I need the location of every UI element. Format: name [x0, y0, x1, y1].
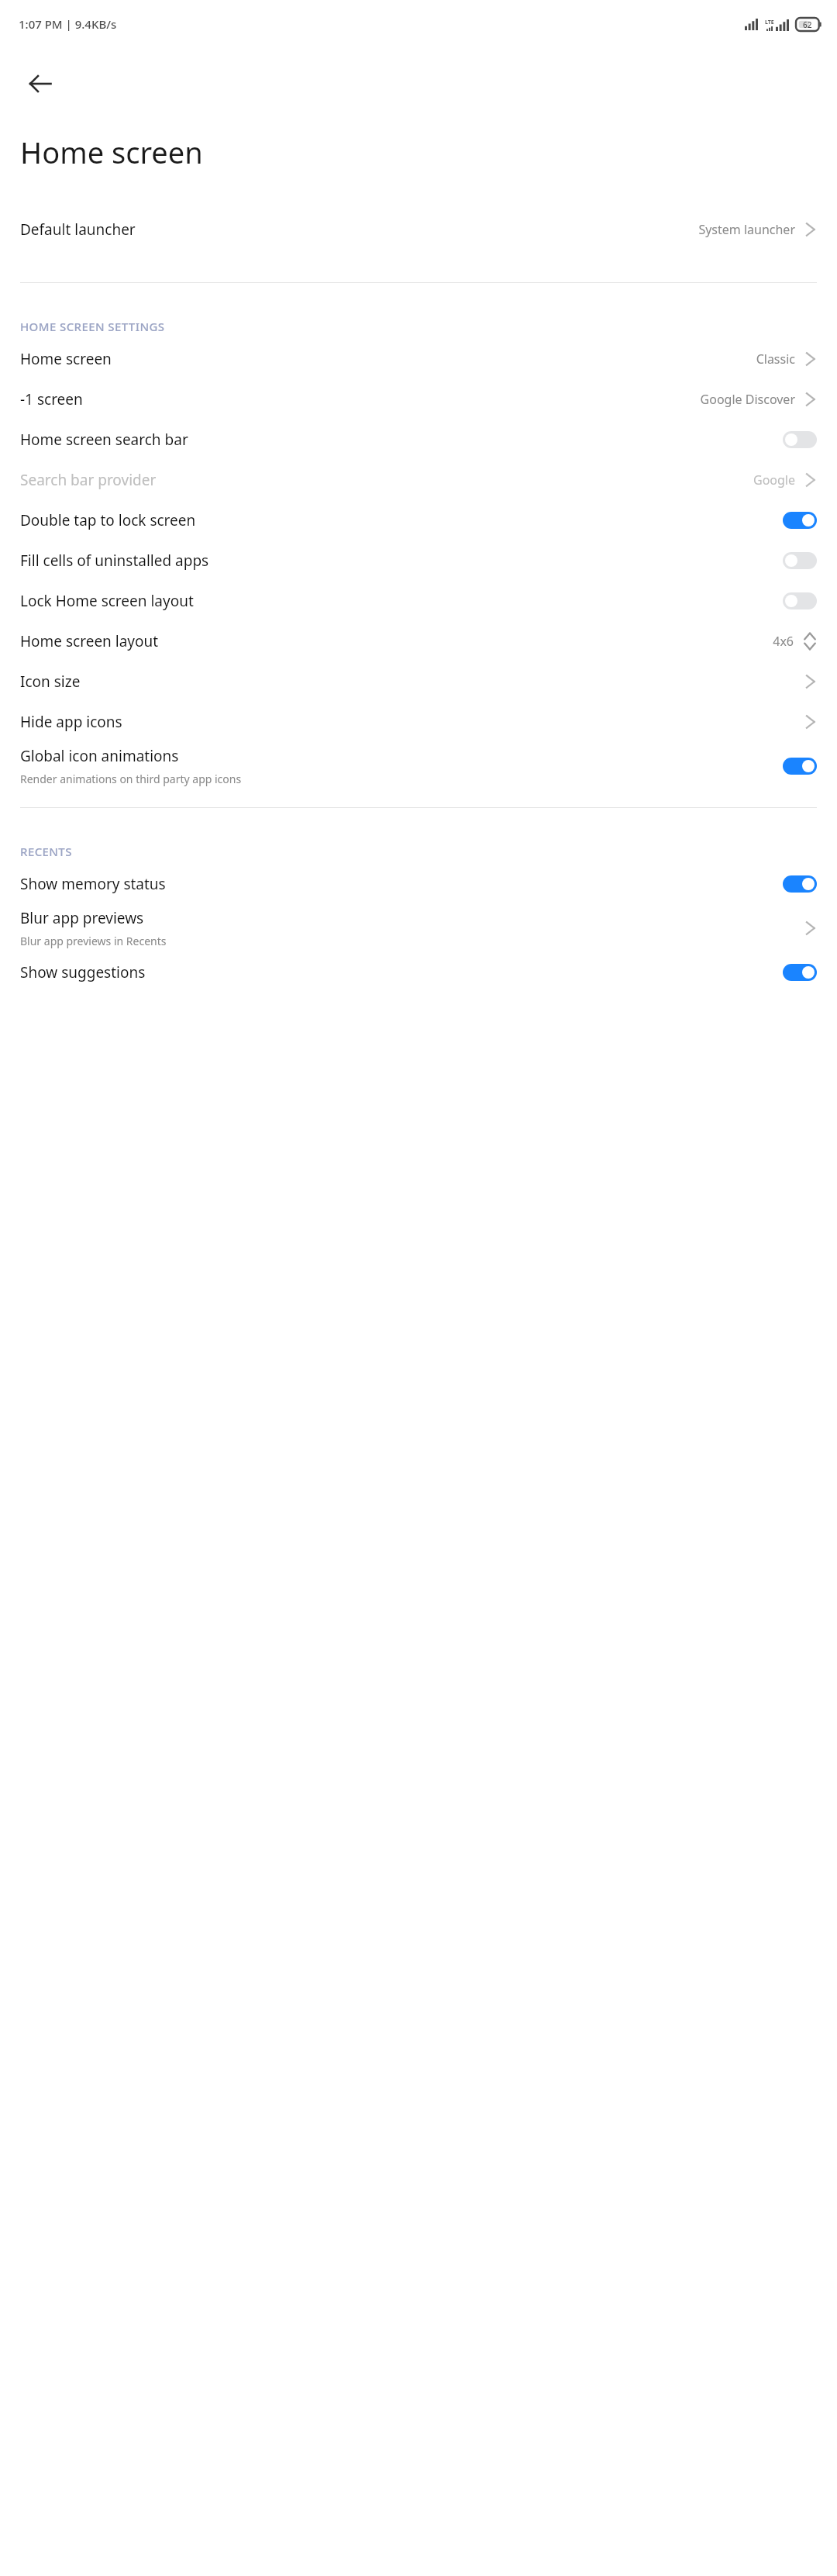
button[interactable]: Lock Home screen layout — [0, 581, 837, 621]
staticText: LTE — [765, 19, 774, 26]
button[interactable]: On — [783, 512, 817, 529]
button[interactable]: On — [783, 964, 817, 981]
staticText: Home screen — [20, 349, 112, 369]
staticText: Hide app icons — [20, 712, 122, 732]
staticText: Home screen layout — [20, 631, 159, 651]
button[interactable]: Home screen search bar — [0, 420, 837, 460]
staticText: Fill cells of uninstalled apps — [20, 551, 209, 571]
staticText: Double tap to lock screen — [20, 510, 196, 530]
button[interactable]: Search bar provider — [0, 460, 837, 500]
staticText: Home screen search bar — [20, 430, 188, 450]
button[interactable]: Show suggestions — [0, 952, 837, 993]
staticText: Render animations on third party app ico… — [20, 772, 242, 786]
staticText: 62 — [803, 19, 812, 30]
button[interactable]: Off — [783, 592, 817, 609]
button[interactable]: Off — [783, 552, 817, 569]
button[interactable]: Home screen layout — [0, 621, 837, 661]
button[interactable]: Double tap to lock screen — [0, 500, 837, 540]
button[interactable]: Blur app previews — [0, 904, 837, 952]
button[interactable]: -1 screen — [0, 379, 837, 420]
staticText: -1 screen — [20, 389, 83, 409]
staticText: Home screen — [20, 132, 203, 172]
staticText: Classic — [756, 350, 795, 368]
staticText: Blur app previews — [20, 908, 144, 928]
button[interactable]: On — [783, 758, 817, 775]
staticText: Google — [753, 471, 795, 489]
staticText: System launcher — [698, 221, 795, 238]
staticText: Blur app previews in Recents — [20, 934, 167, 948]
staticText: Show suggestions — [20, 962, 146, 982]
staticText: 1:07 PM | 9.4KB/s — [19, 16, 117, 32]
staticText: Google Discover — [700, 391, 795, 408]
staticText: 4x6 — [773, 633, 794, 650]
staticText: Global icon animations — [20, 746, 179, 766]
button[interactable]: Default launcher — [0, 192, 837, 267]
button[interactable]: Home screen — [0, 339, 837, 379]
button[interactable]: Icon size — [0, 661, 837, 702]
staticText: Search bar provider — [20, 470, 157, 490]
staticText: HOME SCREEN SETTINGS — [20, 319, 165, 334]
staticText: RECENTS — [20, 844, 72, 859]
button[interactable]: Fill cells of uninstalled apps — [0, 540, 837, 581]
staticText: Lock Home screen layout — [20, 591, 194, 611]
staticText: Icon size — [20, 672, 81, 692]
button[interactable]: Hide app icons — [0, 702, 837, 742]
button[interactable]: On — [783, 875, 817, 893]
button[interactable]: Off — [783, 431, 817, 448]
button[interactable]: Global icon animations — [0, 742, 837, 790]
button[interactable]: Back — [12, 56, 68, 112]
staticText: Default launcher — [20, 219, 136, 240]
staticText: Show memory status — [20, 874, 166, 894]
button[interactable]: Show memory status — [0, 864, 837, 904]
